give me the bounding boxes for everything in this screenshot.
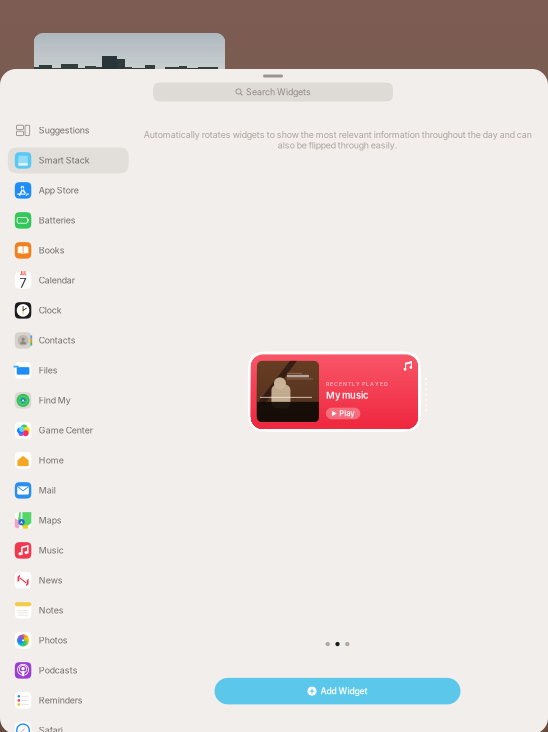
button[interactable]: Maps (0, 505, 137, 535)
staticText: Music (39, 545, 64, 556)
staticText: R E C E N T L Y P L A Y E D (326, 381, 388, 387)
staticText: Smart Stack (39, 155, 90, 166)
staticText: Maps (39, 515, 62, 526)
button[interactable]: Photos (0, 625, 137, 655)
button[interactable]: Books (0, 235, 137, 265)
staticText: Books (39, 245, 65, 256)
staticText: Automatically rotates widgets to show th… (143, 129, 531, 151)
button[interactable]: Reminders (0, 685, 137, 715)
button[interactable]: Mail (0, 475, 137, 505)
staticText: Search Widgets (246, 87, 311, 97)
button[interactable]: Find My (0, 385, 137, 415)
staticText: Podcasts (39, 665, 78, 676)
staticText: Notes (39, 605, 64, 616)
staticText: Safari (39, 725, 63, 732)
staticText: Add Widget (320, 686, 367, 696)
staticText: News (39, 575, 63, 586)
button[interactable]: Safari (0, 715, 137, 732)
staticText: App Store (39, 185, 79, 196)
button[interactable]: Add Widget (214, 678, 460, 704)
button[interactable]: App Store (0, 175, 137, 205)
button[interactable]: Contacts (0, 325, 137, 355)
staticText: Photos (39, 635, 68, 646)
staticText: Contacts (39, 335, 76, 346)
button[interactable]: Smart Stack (0, 145, 137, 175)
staticText: Reminders (39, 695, 83, 706)
button[interactable]: News (0, 565, 137, 595)
staticText: Find My (39, 395, 71, 406)
button[interactable]: Clock (0, 295, 137, 325)
button[interactable]: Search Widgets (153, 82, 393, 101)
staticText: Batteries (39, 215, 76, 226)
staticText: Home (39, 455, 64, 466)
button[interactable]: Suggestions (0, 115, 137, 145)
button[interactable]: Game Center (0, 415, 137, 445)
staticText: Suggestions (39, 125, 90, 136)
staticText: Play (339, 409, 354, 418)
button[interactable]: Files (0, 355, 137, 385)
staticText: My music (326, 390, 368, 401)
button[interactable]: Music (0, 535, 137, 565)
staticText: Calendar (39, 275, 75, 286)
staticText: 7 (20, 276, 27, 291)
staticText: Mail (39, 485, 56, 496)
button[interactable]: Home (0, 445, 137, 475)
button[interactable]: Batteries (0, 205, 137, 235)
button[interactable]: Notes (0, 595, 137, 625)
staticText: Files (39, 365, 58, 376)
button[interactable]: JUL (0, 265, 137, 295)
staticText: JUL (20, 271, 27, 276)
button[interactable]: Podcasts (0, 655, 137, 685)
staticText: Game Center (39, 425, 93, 436)
staticText: Clock (39, 305, 62, 316)
